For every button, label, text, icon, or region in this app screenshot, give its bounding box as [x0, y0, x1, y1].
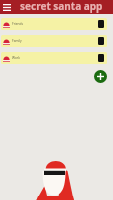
staticText: Friends — [12, 22, 24, 26]
staticText: Family — [12, 39, 22, 43]
button[interactable]: Add group — [94, 70, 107, 83]
button[interactable]: Work — [1, 52, 107, 64]
button[interactable]: Options — [98, 54, 104, 62]
button[interactable]: Options — [98, 37, 104, 45]
staticText: secret santa app — [20, 0, 103, 13]
button[interactable]: Menu — [0, 0, 13, 14]
button[interactable]: Family — [1, 35, 107, 47]
staticText: Work — [12, 56, 20, 60]
button[interactable]: Friends — [1, 18, 107, 30]
button[interactable]: Options — [98, 20, 104, 28]
